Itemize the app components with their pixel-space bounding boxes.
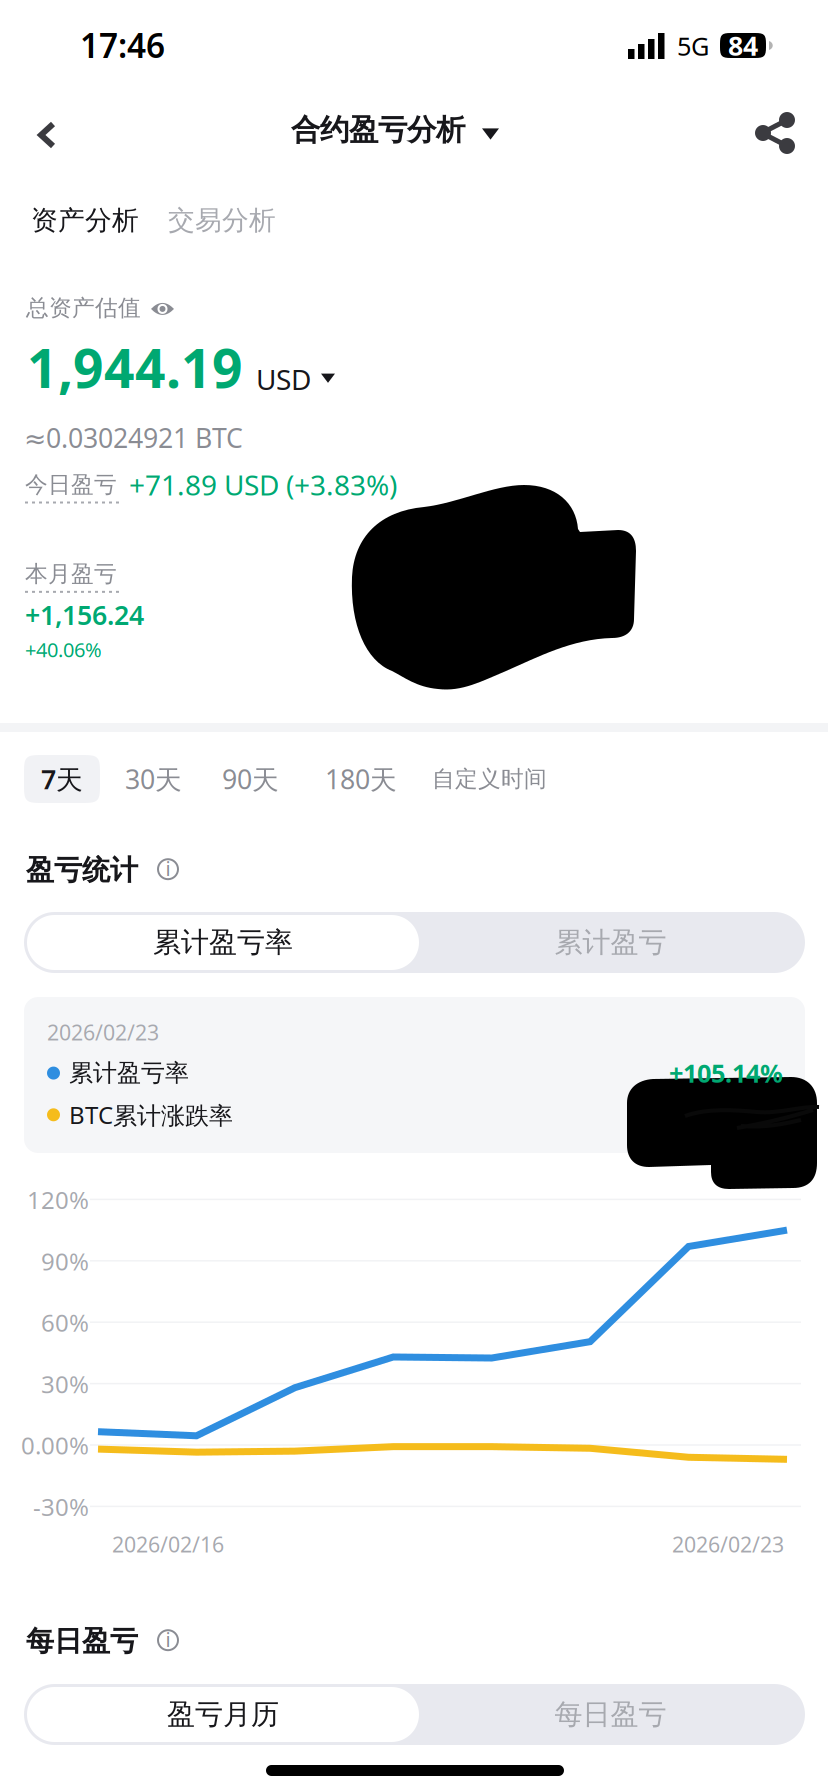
staticText: i: [165, 1626, 170, 1652]
button[interactable]: 资产分析: [31, 204, 139, 237]
staticText: 180天: [325, 761, 397, 797]
button[interactable]: 30天: [125, 755, 182, 803]
staticText: 1,944.19: [27, 332, 243, 403]
button[interactable]: 7天: [24, 755, 100, 803]
staticText: 30天: [125, 761, 182, 797]
staticText: 5G: [677, 29, 709, 63]
button[interactable]: 自定义时间: [432, 757, 547, 801]
staticText: 累计盈亏: [554, 925, 666, 960]
staticText: 总资产估值: [26, 294, 141, 322]
button[interactable]: 累计盈亏率: [27, 915, 419, 970]
staticText: 盈亏月历: [167, 1697, 279, 1732]
staticText: ≈0.03024921 BTC: [24, 420, 243, 455]
staticText: 2026/02/16: [112, 1530, 224, 1558]
staticText: 每日盈亏: [554, 1697, 666, 1732]
staticText: 本月盈亏: [25, 560, 117, 588]
staticText: 2026/02/23: [672, 1530, 784, 1558]
button[interactable]: Toggle balance visibility: [151, 301, 174, 315]
button[interactable]: 累计盈亏: [419, 915, 802, 970]
staticText: +105.14%: [669, 1056, 783, 1090]
staticText: +1,156.24: [25, 597, 144, 632]
staticText: 累计盈亏率: [69, 1058, 189, 1088]
button[interactable]: 盈亏月历: [27, 1687, 419, 1742]
staticText: 60%: [41, 1307, 89, 1338]
staticText: 7天: [41, 761, 83, 797]
staticText: 2026/02/23: [47, 1018, 159, 1046]
button[interactable]: Share: [752, 110, 798, 156]
button[interactable]: 每日盈亏: [419, 1687, 802, 1742]
staticText: 今日盈亏: [25, 471, 117, 498]
button[interactable]: USD: [243, 361, 335, 403]
staticText: 84: [728, 28, 758, 63]
staticText: i: [165, 855, 170, 881]
button[interactable]: Back: [26, 110, 68, 160]
staticText: 30%: [41, 1368, 89, 1400]
staticText: 交易分析: [168, 204, 276, 237]
staticText: 自定义时间: [432, 765, 547, 793]
staticText: 累计盈亏率: [153, 925, 293, 960]
staticText: +40.06%: [25, 636, 102, 663]
button[interactable]: About daily P&L: [157, 1630, 179, 1652]
staticText: -30%: [33, 1491, 89, 1523]
staticText: USD: [256, 361, 311, 398]
staticText: 90天: [222, 761, 279, 797]
staticText: 90%: [41, 1245, 89, 1277]
button[interactable]: 90天: [222, 755, 279, 803]
button[interactable]: 交易分析: [168, 204, 276, 237]
staticText: BTC累计涨跌率: [69, 1099, 233, 1131]
staticText: 120%: [27, 1184, 89, 1216]
staticText: 0.00%: [21, 1429, 89, 1461]
button[interactable]: 合约盈亏分析: [291, 112, 499, 148]
button[interactable]: About P&L statistics: [157, 859, 179, 881]
staticText: 资产分析: [31, 204, 139, 237]
staticText: 17:46: [80, 23, 165, 67]
button[interactable]: 180天: [325, 755, 397, 803]
staticText: +71.89 USD (+3.83%): [129, 466, 397, 503]
staticText: 合约盈亏分析: [291, 112, 465, 148]
staticText: 每日盈亏: [26, 1624, 138, 1658]
staticText: 盈亏统计: [26, 853, 138, 887]
